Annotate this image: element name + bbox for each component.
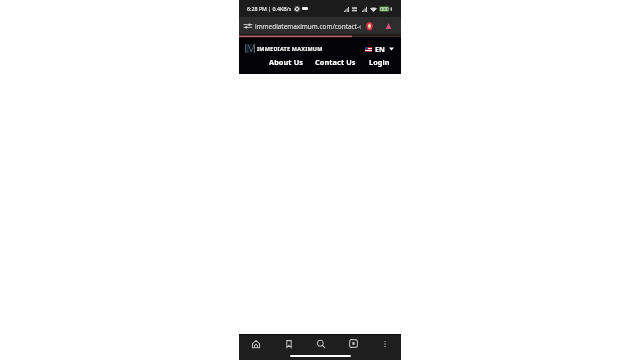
button[interactable]: Brave Rewards (385, 22, 392, 30)
staticText: IMMEDIATE MAXIMUM (257, 45, 323, 52)
button[interactable]: Login (369, 57, 390, 67)
button[interactable]: Brave Shields (366, 21, 373, 31)
staticText: About Us (269, 57, 304, 67)
staticText: Login (369, 57, 390, 67)
button[interactable]: Search (305, 335, 337, 352)
button[interactable]: Bookmarks (272, 335, 305, 352)
button[interactable]: About Us (269, 57, 304, 67)
staticText: 6:28 PM | 0.4KB/s (247, 5, 292, 12)
button[interactable]: Language EN (365, 44, 394, 54)
staticText: EN (375, 44, 385, 54)
button[interactable]: More options (369, 335, 401, 352)
button[interactable]: Address bar (239, 17, 401, 34)
staticText: Contact Us (315, 57, 356, 67)
staticText: immediatemaximum.com/contact-‹ (255, 22, 366, 31)
button[interactable]: Home (239, 335, 272, 352)
button[interactable]: Contact Us (315, 57, 356, 67)
button[interactable]: Tabs (337, 335, 369, 352)
